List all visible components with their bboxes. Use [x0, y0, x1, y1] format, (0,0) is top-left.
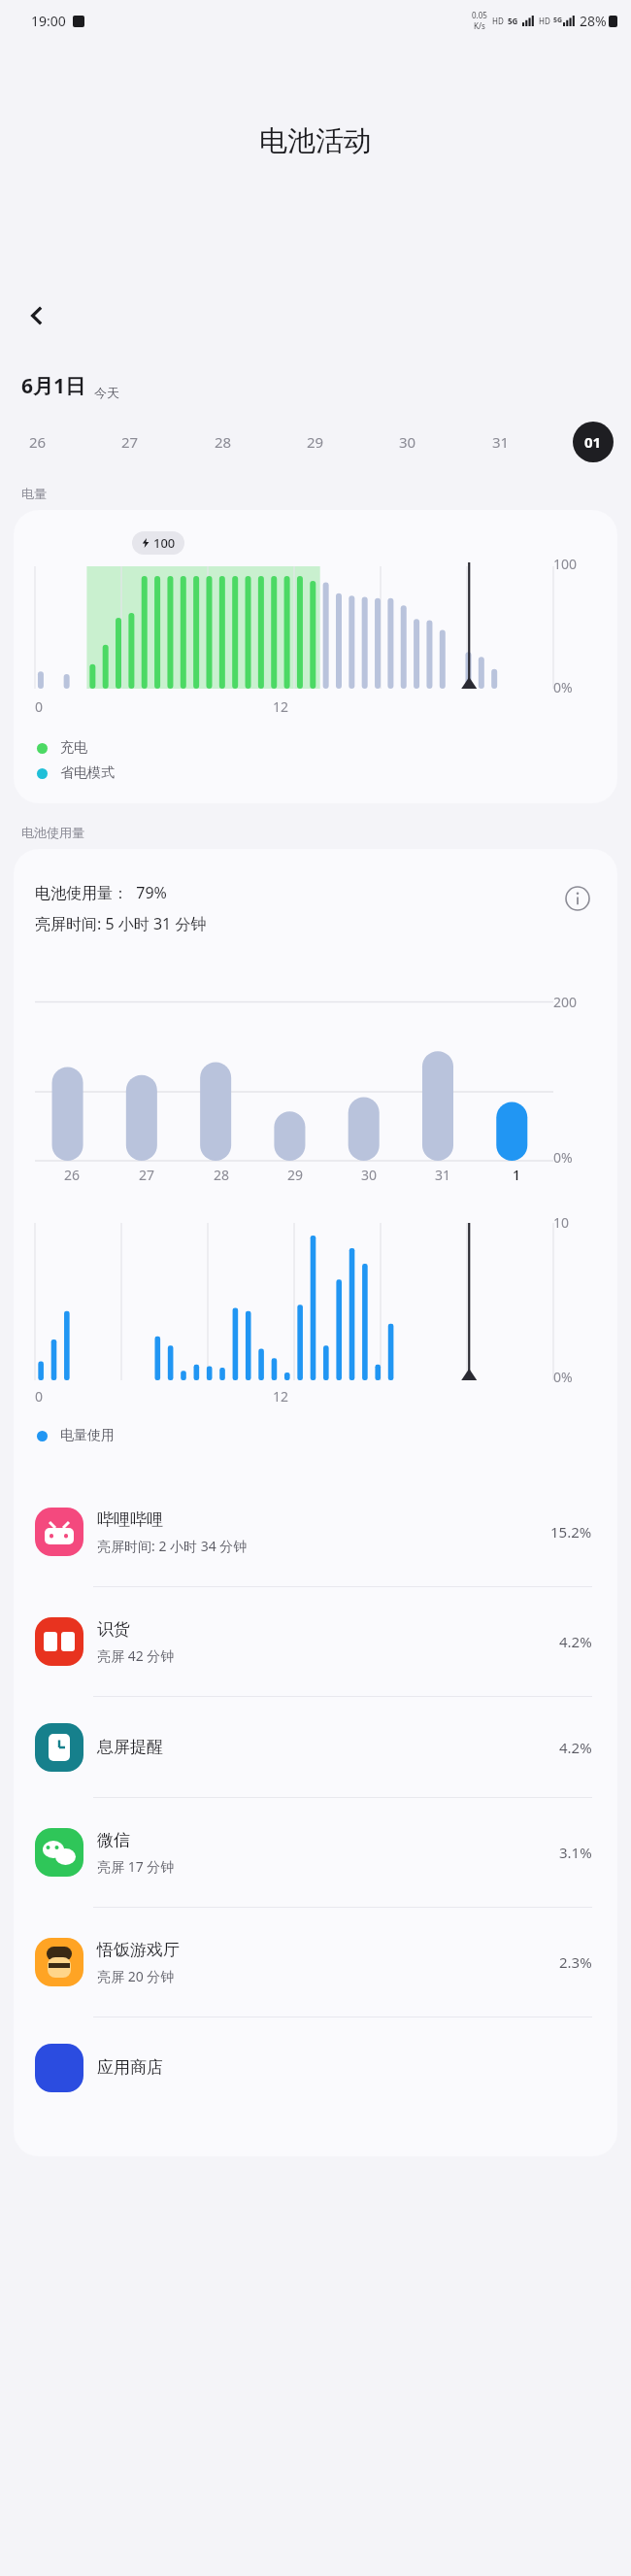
staticText: 4.2%: [559, 1738, 592, 1757]
button[interactable]: 01: [573, 422, 614, 462]
staticText: 01: [584, 432, 602, 452]
button[interactable]: 微信: [14, 1798, 617, 1907]
staticText: 28: [214, 1166, 230, 1184]
staticText: 0.05: [472, 10, 487, 20]
staticText: 26: [29, 432, 47, 452]
staticText: 今天: [94, 385, 119, 400]
staticText: 亮屏时间: 5 小时 31 分钟: [35, 913, 207, 934]
staticText: 28: [215, 432, 232, 452]
staticText: 30: [399, 432, 416, 452]
staticText: 亮屏 20 分钟: [97, 1967, 175, 1985]
staticText: 0%: [553, 678, 573, 696]
button[interactable]: 息屏提醒: [14, 1697, 617, 1797]
staticText: 29: [307, 432, 324, 452]
button[interactable]: 100: [14, 510, 617, 803]
staticText: 0: [35, 697, 44, 716]
staticText: K/s: [474, 20, 485, 31]
staticText: 悟饭游戏厅: [97, 1940, 180, 1960]
staticText: 2.3%: [559, 1952, 592, 1972]
button[interactable]: 悟饭游戏厅: [14, 1908, 617, 2017]
staticText: 6月1日: [21, 372, 86, 400]
staticText: 12: [273, 1387, 289, 1406]
button[interactable]: Info: [561, 882, 594, 915]
staticText: 电池活动: [0, 123, 631, 159]
staticText: 哔哩哔哩: [97, 1509, 163, 1530]
staticText: 30: [361, 1166, 378, 1184]
staticText: 省电模式: [60, 764, 115, 782]
button[interactable]: 识货: [14, 1587, 617, 1696]
staticText: HD: [539, 16, 550, 26]
staticText: 31: [435, 1166, 451, 1184]
staticText: 0: [35, 1387, 44, 1406]
staticText: 100: [153, 534, 176, 552]
staticText: 100: [553, 555, 578, 573]
staticText: 亮屏时间: 2 小时 34 分钟: [97, 1537, 248, 1555]
staticText: 10: [553, 1213, 570, 1232]
staticText: 电池使用量： 79%: [35, 882, 167, 903]
staticText: 电量: [21, 486, 47, 501]
button[interactable]: 28: [203, 422, 244, 462]
staticText: 28%: [580, 12, 607, 30]
staticText: 3.1%: [559, 1843, 592, 1862]
staticText: 亮屏 42 分钟: [97, 1646, 175, 1665]
button[interactable]: 31: [481, 422, 521, 462]
staticText: 19:00: [31, 12, 66, 30]
staticText: 充电: [60, 739, 87, 757]
staticText: 29: [287, 1166, 304, 1184]
staticText: 电池使用量: [21, 825, 84, 840]
staticText: 1: [513, 1166, 521, 1184]
staticText: 27: [121, 432, 139, 452]
staticText: 15.2%: [550, 1522, 592, 1542]
button[interactable]: 27: [110, 422, 150, 462]
staticText: 应用商店: [97, 2057, 163, 2078]
staticText: HD: [492, 16, 504, 26]
button[interactable]: 哔哩哔哩: [14, 1477, 617, 1586]
button[interactable]: Back: [12, 290, 62, 341]
staticText: 5G: [553, 16, 563, 25]
staticText: 27: [139, 1166, 155, 1184]
button[interactable]: 29: [295, 422, 336, 462]
staticText: 0%: [553, 1148, 573, 1167]
button[interactable]: 30: [387, 422, 428, 462]
staticText: 5G: [508, 16, 518, 26]
staticText: 识货: [97, 1619, 130, 1640]
staticText: 12: [273, 697, 289, 716]
staticText: 微信: [97, 1830, 130, 1850]
button[interactable]: 26: [17, 422, 58, 462]
staticText: 4.2%: [559, 1632, 592, 1651]
button[interactable]: 应用商店: [14, 2017, 617, 2118]
staticText: 息屏提醒: [97, 1737, 163, 1757]
staticText: 200: [553, 993, 578, 1011]
staticText: 26: [64, 1166, 81, 1184]
staticText: 0%: [553, 1368, 573, 1386]
staticText: 电量使用: [60, 1427, 115, 1444]
staticText: 31: [492, 432, 510, 452]
staticText: 亮屏 17 分钟: [97, 1857, 175, 1876]
